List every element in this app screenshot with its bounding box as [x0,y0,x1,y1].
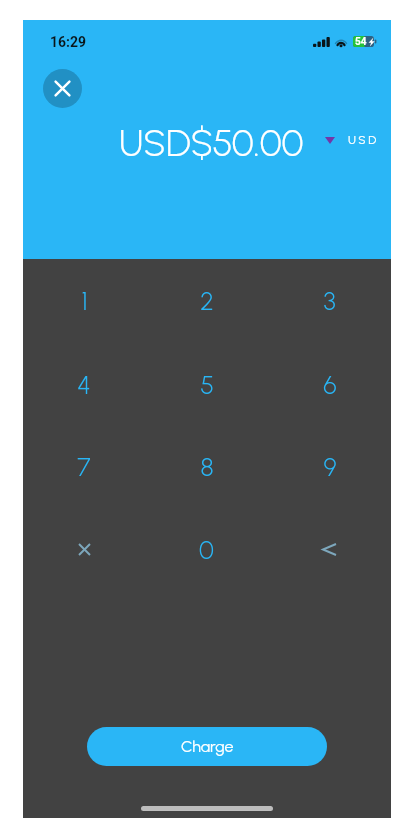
button[interactable]: 5 [145,343,268,426]
button[interactable]: 4 [23,343,145,426]
staticText: 5 [200,370,214,400]
button[interactable]: 7 [23,426,145,508]
button[interactable]: 1 [23,259,145,343]
staticText: USD [348,133,379,147]
button[interactable]: 9 [268,426,391,508]
button[interactable]: 3 [268,259,391,343]
button[interactable]: Clear [23,508,145,591]
button[interactable]: 2 [145,259,268,343]
button[interactable]: 6 [268,343,391,426]
staticText: 4 [77,370,91,400]
staticText: 1 [81,286,88,316]
staticText: 6 [323,370,337,400]
button[interactable]: 8 [145,426,268,508]
button[interactable]: 0 [145,508,268,591]
staticText: 7 [77,452,91,482]
staticText: 2 [200,286,214,316]
staticText: 8 [200,452,214,482]
staticText: 0 [199,535,214,565]
staticText: 9 [323,452,337,482]
staticText: 16:29 [50,34,87,50]
staticText: USD$50.00 [119,121,304,165]
button[interactable]: Charge [87,727,327,766]
staticText: 3 [323,286,336,316]
staticText: Charge [181,737,234,756]
staticText: 54 [355,36,367,47]
button[interactable]: Close [43,69,82,108]
button[interactable]: Backspace [268,508,391,591]
